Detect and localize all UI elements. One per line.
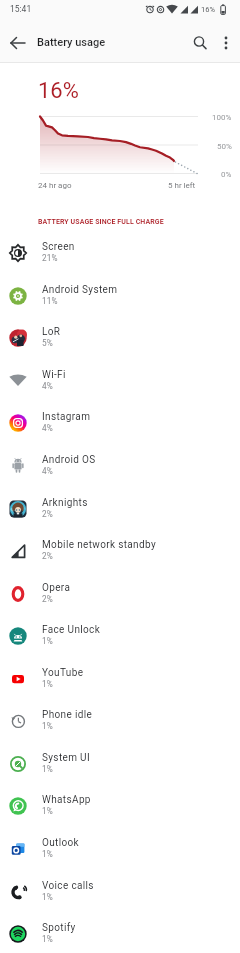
staticText: Face Unlock [42,624,101,636]
staticText: Arknights [42,497,88,509]
staticText: 5 hr left [168,181,196,190]
button[interactable]: LoR [0,316,240,359]
staticText: 1% [42,934,53,944]
button[interactable] [214,29,238,57]
staticText: System UI [42,752,91,764]
button[interactable]: YouTube [0,657,240,700]
staticText: 16% [201,5,215,14]
staticText: WhatsApp [42,794,91,806]
staticText: 4% [42,423,53,433]
staticText: 1% [42,892,53,902]
button[interactable]: Screen [0,231,240,274]
staticText: Spotify [42,922,76,934]
staticText: 5% [42,338,53,348]
staticText: Instagram [42,411,91,423]
staticText: Battery usage [37,36,106,49]
button[interactable]: Voice calls [0,870,240,913]
staticText: Android System [42,284,118,296]
button[interactable]: Android OS [0,444,240,487]
button[interactable]: Outlook [0,827,240,870]
staticText: Screen [42,241,75,253]
staticText: 1% [42,849,53,859]
staticText: 16% [38,78,79,104]
staticText: YouTube [42,667,84,679]
staticText: 11% [42,296,58,306]
button[interactable]: Spotify [0,912,240,953]
staticText: Android OS [42,454,96,466]
staticText: 15:41 [10,4,32,14]
staticText: 1% [42,806,53,816]
staticText: 1% [42,679,53,689]
staticText: 24 hr ago [38,181,72,190]
button[interactable]: Mobile network standby [0,529,240,572]
staticText: Opera [42,582,71,594]
button[interactable]: Face Unlock [0,614,240,657]
staticText: 100% [212,113,232,122]
staticText: 2% [42,551,53,561]
staticText: Outlook [42,837,80,849]
staticText: 50% [217,142,232,151]
button[interactable]: WhatsApp [0,784,240,827]
button[interactable]: Arknights [0,487,240,530]
button[interactable]: Android System [0,274,240,317]
button[interactable]: Phone idle [0,699,240,742]
staticText: 4% [42,466,53,476]
staticText: 4% [42,381,53,391]
button[interactable] [186,29,214,57]
staticText: Mobile network standby [42,539,156,551]
staticText: Phone idle [42,709,93,721]
staticText: 2% [42,509,53,519]
staticText: LoR [42,326,61,338]
staticText: Voice calls [42,880,94,892]
button[interactable] [4,29,32,57]
staticText: 1% [42,764,53,774]
button[interactable]: Wi-Fi [0,359,240,402]
button[interactable]: System UI [0,742,240,785]
button[interactable]: Instagram [0,401,240,444]
staticText: 0% [221,170,232,179]
staticText: Wi-Fi [42,369,66,381]
staticText: 1% [42,721,53,731]
staticText: 1% [42,636,53,646]
staticText: 21% [42,253,58,263]
button[interactable]: Opera [0,572,240,615]
staticText: 2% [42,594,53,604]
staticText: BATTERY USAGE SINCE FULL CHARGE [38,218,164,226]
